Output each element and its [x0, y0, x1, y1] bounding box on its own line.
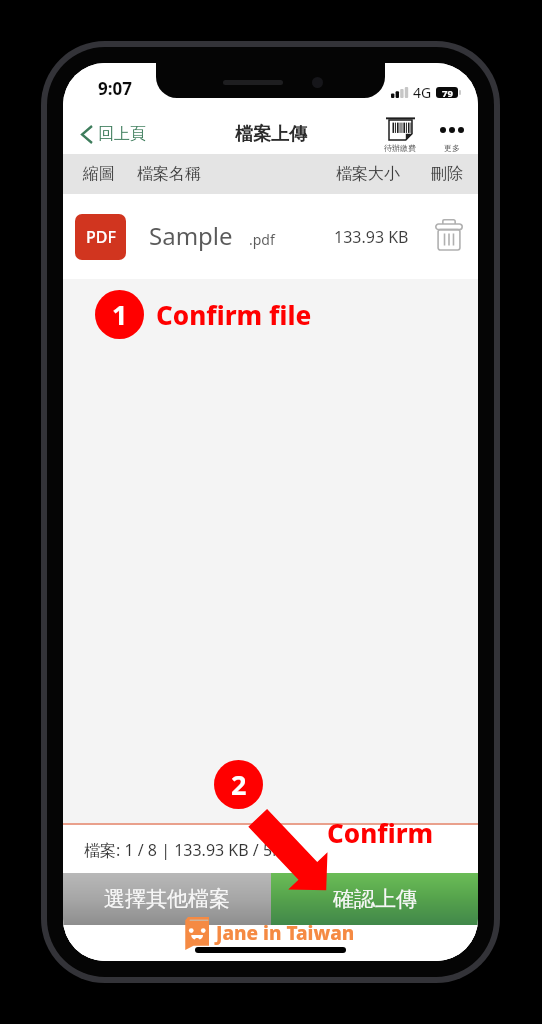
button[interactable]: 更多: [426, 118, 478, 153]
staticText: 回上頁: [98, 124, 146, 144]
button[interactable]: PDF: [63, 194, 478, 279]
staticText: 2: [231, 766, 247, 803]
staticText: PDF: [86, 226, 116, 248]
button[interactable]: 選擇其他檔案: [63, 873, 271, 925]
staticText: 確認上傳: [333, 886, 417, 912]
staticText: 133.93 KB: [334, 226, 409, 248]
button[interactable]: 確認上傳: [271, 873, 478, 925]
staticText: 9:07: [98, 77, 132, 100]
staticText: 選擇其他檔案: [104, 886, 230, 912]
staticText: 刪除: [431, 164, 463, 184]
staticText: 待辦繳費: [384, 143, 416, 153]
staticText: Sample: [149, 219, 233, 252]
staticText: 1: [112, 296, 128, 333]
staticText: 縮圖: [83, 164, 115, 184]
staticText: Confirm: [327, 815, 434, 850]
staticText: Confirm file: [156, 297, 312, 332]
button[interactable]: 刪除: [427, 211, 471, 259]
staticText: Jane in Taiwan: [216, 920, 355, 946]
staticText: 檔案上傳: [235, 123, 307, 146]
staticText: 檔案大小: [336, 164, 400, 184]
button[interactable]: 回上頁: [75, 118, 154, 150]
staticText: .pdf: [249, 230, 275, 249]
staticText: 4G: [413, 83, 432, 102]
staticText: 檔案: 1 / 8 | 133.93 KB / 5MB: [84, 839, 298, 861]
staticText: 更多: [444, 143, 460, 153]
staticText: 檔案名稱: [137, 164, 201, 184]
button[interactable]: 待辦繳費: [371, 117, 429, 153]
staticText: 79: [442, 87, 453, 98]
